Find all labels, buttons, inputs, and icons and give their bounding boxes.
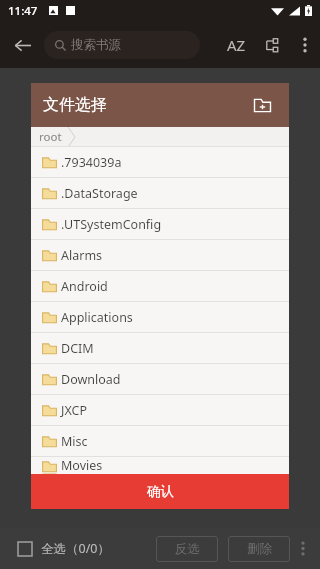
button[interactable]: More options bbox=[290, 23, 320, 67]
staticText: AZ bbox=[227, 35, 246, 55]
button[interactable]: DCIM bbox=[31, 333, 289, 363]
button[interactable]: root bbox=[31, 127, 81, 147]
button[interactable]: JXCP bbox=[31, 395, 289, 425]
button[interactable]: 删除 bbox=[228, 536, 290, 562]
staticText: Movies bbox=[61, 457, 103, 474]
staticText: 搜索书源 bbox=[71, 37, 121, 53]
staticText: root bbox=[39, 129, 62, 145]
staticText: Alarms bbox=[61, 247, 103, 264]
button[interactable]: 确认 bbox=[31, 474, 289, 509]
button[interactable]: New folder bbox=[247, 90, 277, 120]
button[interactable]: Alarms bbox=[31, 240, 289, 270]
button[interactable]: 反选 bbox=[156, 536, 218, 562]
staticText: .DataStorage bbox=[61, 185, 138, 202]
staticText: .UTSystemConfig bbox=[61, 216, 162, 233]
button[interactable]: Misc bbox=[31, 426, 289, 456]
button[interactable]: Download bbox=[31, 364, 289, 394]
button[interactable]: .7934039a bbox=[31, 147, 289, 177]
button[interactable]: More options bbox=[290, 528, 316, 569]
staticText: 反选 bbox=[175, 541, 200, 557]
button[interactable]: 搜索书源 bbox=[44, 31, 200, 59]
staticText: Download bbox=[61, 371, 121, 388]
staticText: DCIM bbox=[61, 340, 94, 357]
button[interactable]: Movies bbox=[31, 457, 289, 474]
staticText: .7934039a bbox=[61, 154, 122, 171]
button[interactable]: Applications bbox=[31, 302, 289, 332]
button[interactable]: .UTSystemConfig bbox=[31, 209, 289, 239]
button[interactable]: Sort bbox=[218, 23, 254, 67]
button[interactable]: Android bbox=[31, 271, 289, 301]
staticText: Android bbox=[61, 278, 108, 295]
button[interactable]: Back bbox=[0, 23, 44, 67]
staticText: 11:47 bbox=[8, 3, 38, 19]
staticText: 文件选择 bbox=[43, 95, 107, 115]
staticText: 全选（0/0） bbox=[41, 540, 110, 557]
staticText: 确认 bbox=[147, 483, 174, 500]
staticText: Applications bbox=[61, 309, 133, 326]
button[interactable]: Groups bbox=[254, 23, 290, 67]
staticText: 删除 bbox=[247, 541, 272, 557]
button[interactable]: 全选（0/0） bbox=[0, 528, 118, 569]
button[interactable]: .DataStorage bbox=[31, 178, 289, 208]
staticText: JXCP bbox=[61, 402, 87, 419]
staticText: Misc bbox=[61, 433, 88, 450]
